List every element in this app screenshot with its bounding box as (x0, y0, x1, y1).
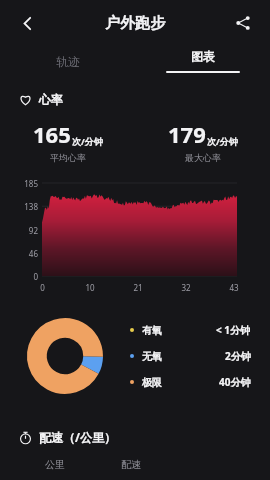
button[interactable]: 心率 (19, 92, 270, 107)
staticText: 40分钟 (219, 375, 251, 389)
staticText: 有氧 (142, 324, 162, 337)
button[interactable]: Back (10, 6, 44, 40)
button[interactable]: 179 (135, 119, 270, 163)
staticText: 轨迹 (56, 54, 80, 69)
staticText: 21 (133, 282, 143, 293)
staticText: 平均心率 (50, 152, 86, 163)
staticText: 0 (40, 282, 45, 293)
staticText: 户外跑步 (105, 14, 165, 33)
button[interactable]: 无氧 (130, 349, 251, 363)
staticText: 次/分钟 (207, 135, 238, 147)
staticText: 2分钟 (225, 349, 251, 363)
staticText: 0 (33, 271, 38, 282)
staticText: < 1分钟 (216, 323, 251, 337)
button[interactable]: 极限 (130, 375, 251, 389)
staticText: 185 (24, 178, 38, 189)
button[interactable]: 165 (0, 119, 135, 163)
staticText: 10 (85, 282, 95, 293)
staticText: 最大心率 (185, 152, 221, 163)
button[interactable]: Share (226, 6, 260, 40)
staticText: 公里 (45, 458, 65, 471)
staticText: 无氧 (142, 350, 162, 363)
staticText: 179 (168, 119, 206, 149)
staticText: 配速 (121, 458, 141, 471)
staticText: 165 (33, 119, 71, 149)
button[interactable]: 图表 (135, 46, 270, 76)
staticText: 极限 (142, 376, 162, 389)
staticText: 心率 (39, 92, 63, 107)
staticText: 92 (28, 225, 38, 236)
staticText: 次/分钟 (72, 135, 103, 147)
staticText: 配速（/公里） (39, 429, 116, 445)
staticText: 46 (28, 248, 38, 259)
button[interactable]: 轨迹 (0, 46, 135, 76)
staticText: 138 (24, 201, 38, 212)
staticText: 32 (181, 282, 191, 293)
staticText: 43 (229, 282, 239, 293)
button[interactable]: 配速（/公里） (19, 429, 270, 445)
button[interactable]: 有氧 (130, 323, 251, 337)
staticText: 图表 (191, 49, 215, 64)
